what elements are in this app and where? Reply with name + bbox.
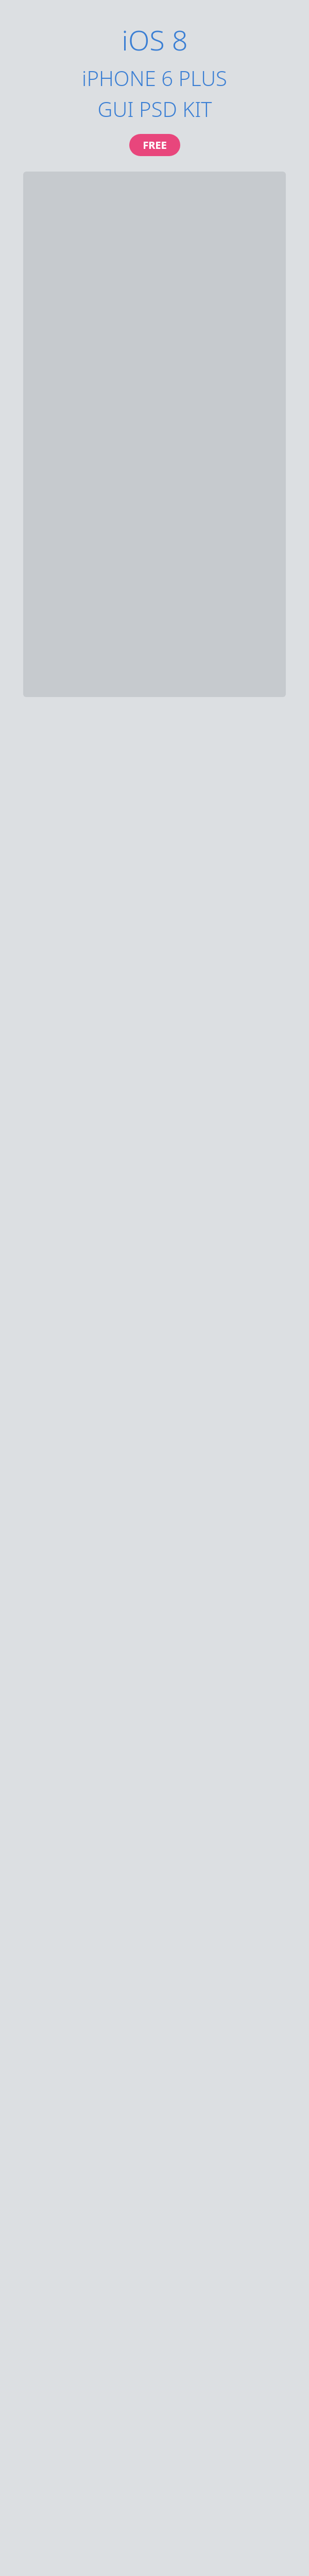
staticText: iOS 8	[122, 21, 188, 59]
button[interactable]: FREE	[129, 134, 180, 156]
staticText: GUI PSD KIT	[97, 95, 212, 123]
staticText: iPHONE 6 PLUS	[82, 64, 227, 92]
staticText: FREE	[143, 138, 167, 152]
